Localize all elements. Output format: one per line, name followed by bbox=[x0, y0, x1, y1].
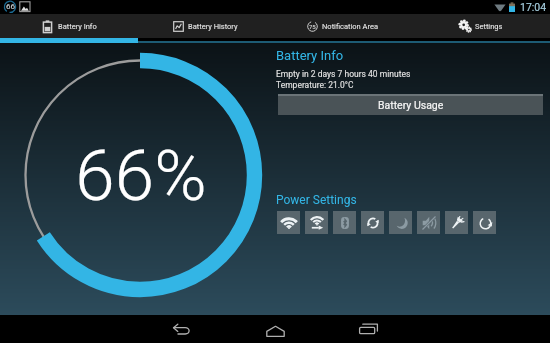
button[interactable]: Night mode bbox=[389, 211, 412, 234]
staticText: Settings bbox=[475, 22, 503, 31]
button[interactable]: Reboot bbox=[473, 211, 496, 234]
staticText: 66 bbox=[6, 2, 15, 11]
button[interactable]: Mute bbox=[417, 211, 440, 234]
button[interactable]: Recent apps bbox=[322, 315, 415, 343]
button[interactable]: Battery Usage bbox=[278, 94, 543, 115]
staticText: Notification Area bbox=[322, 22, 379, 31]
staticText: Battery History bbox=[188, 22, 238, 31]
button[interactable]: Wi-Fi bbox=[277, 211, 300, 234]
staticText: Temperature: 21.0°C bbox=[276, 80, 354, 90]
button[interactable]: Home bbox=[229, 315, 322, 343]
staticText: Empty in 2 days 7 hours 40 minutes bbox=[276, 69, 411, 79]
staticText: 66% bbox=[75, 134, 207, 217]
staticText: Battery Info bbox=[276, 48, 344, 63]
button[interactable]: Bluetooth bbox=[333, 211, 356, 234]
button[interactable]: Battery History bbox=[137, 14, 274, 38]
staticText: Battery Usage bbox=[378, 99, 444, 111]
button[interactable]: Flashlight bbox=[445, 211, 468, 234]
button[interactable]: Settings bbox=[412, 14, 550, 38]
staticText: Battery Info bbox=[58, 22, 97, 31]
staticText: 17:04 bbox=[520, 1, 547, 13]
button[interactable]: Battery Info bbox=[0, 14, 137, 38]
staticText: 75 bbox=[309, 23, 316, 30]
button[interactable]: Auto sync bbox=[361, 211, 384, 234]
staticText: Power Settings bbox=[276, 193, 357, 207]
button[interactable]: Wi-Fi hotspot bbox=[305, 211, 328, 234]
button[interactable]: 75 bbox=[274, 14, 412, 38]
button[interactable]: Back bbox=[136, 315, 229, 343]
